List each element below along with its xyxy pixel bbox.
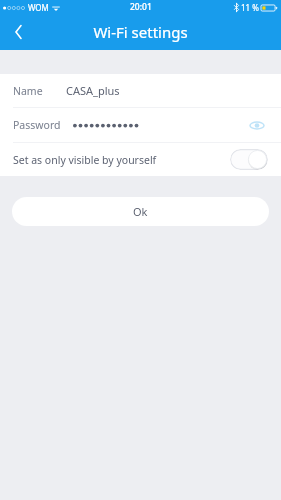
button[interactable]: Ok <box>12 197 269 226</box>
button[interactable]: Set as only visible by yourself <box>230 149 268 170</box>
button[interactable]: Name <box>0 74 281 107</box>
staticText: Wi-Fi settings <box>93 22 188 42</box>
staticText: CASA_plus <box>66 83 120 98</box>
button[interactable]: Password <box>0 108 281 142</box>
staticText: Set as only visible by yourself <box>13 153 157 167</box>
staticText: Password <box>13 118 61 132</box>
button[interactable]: Set as only visible by yourself <box>0 143 281 176</box>
button[interactable]: Show password <box>246 114 268 136</box>
staticText: WOM <box>28 2 49 13</box>
staticText: 11 % <box>241 2 259 13</box>
button[interactable]: Back <box>0 14 36 50</box>
staticText: Name <box>13 84 43 98</box>
staticText: 20:01 <box>130 1 152 13</box>
staticText: Ok <box>133 204 148 219</box>
